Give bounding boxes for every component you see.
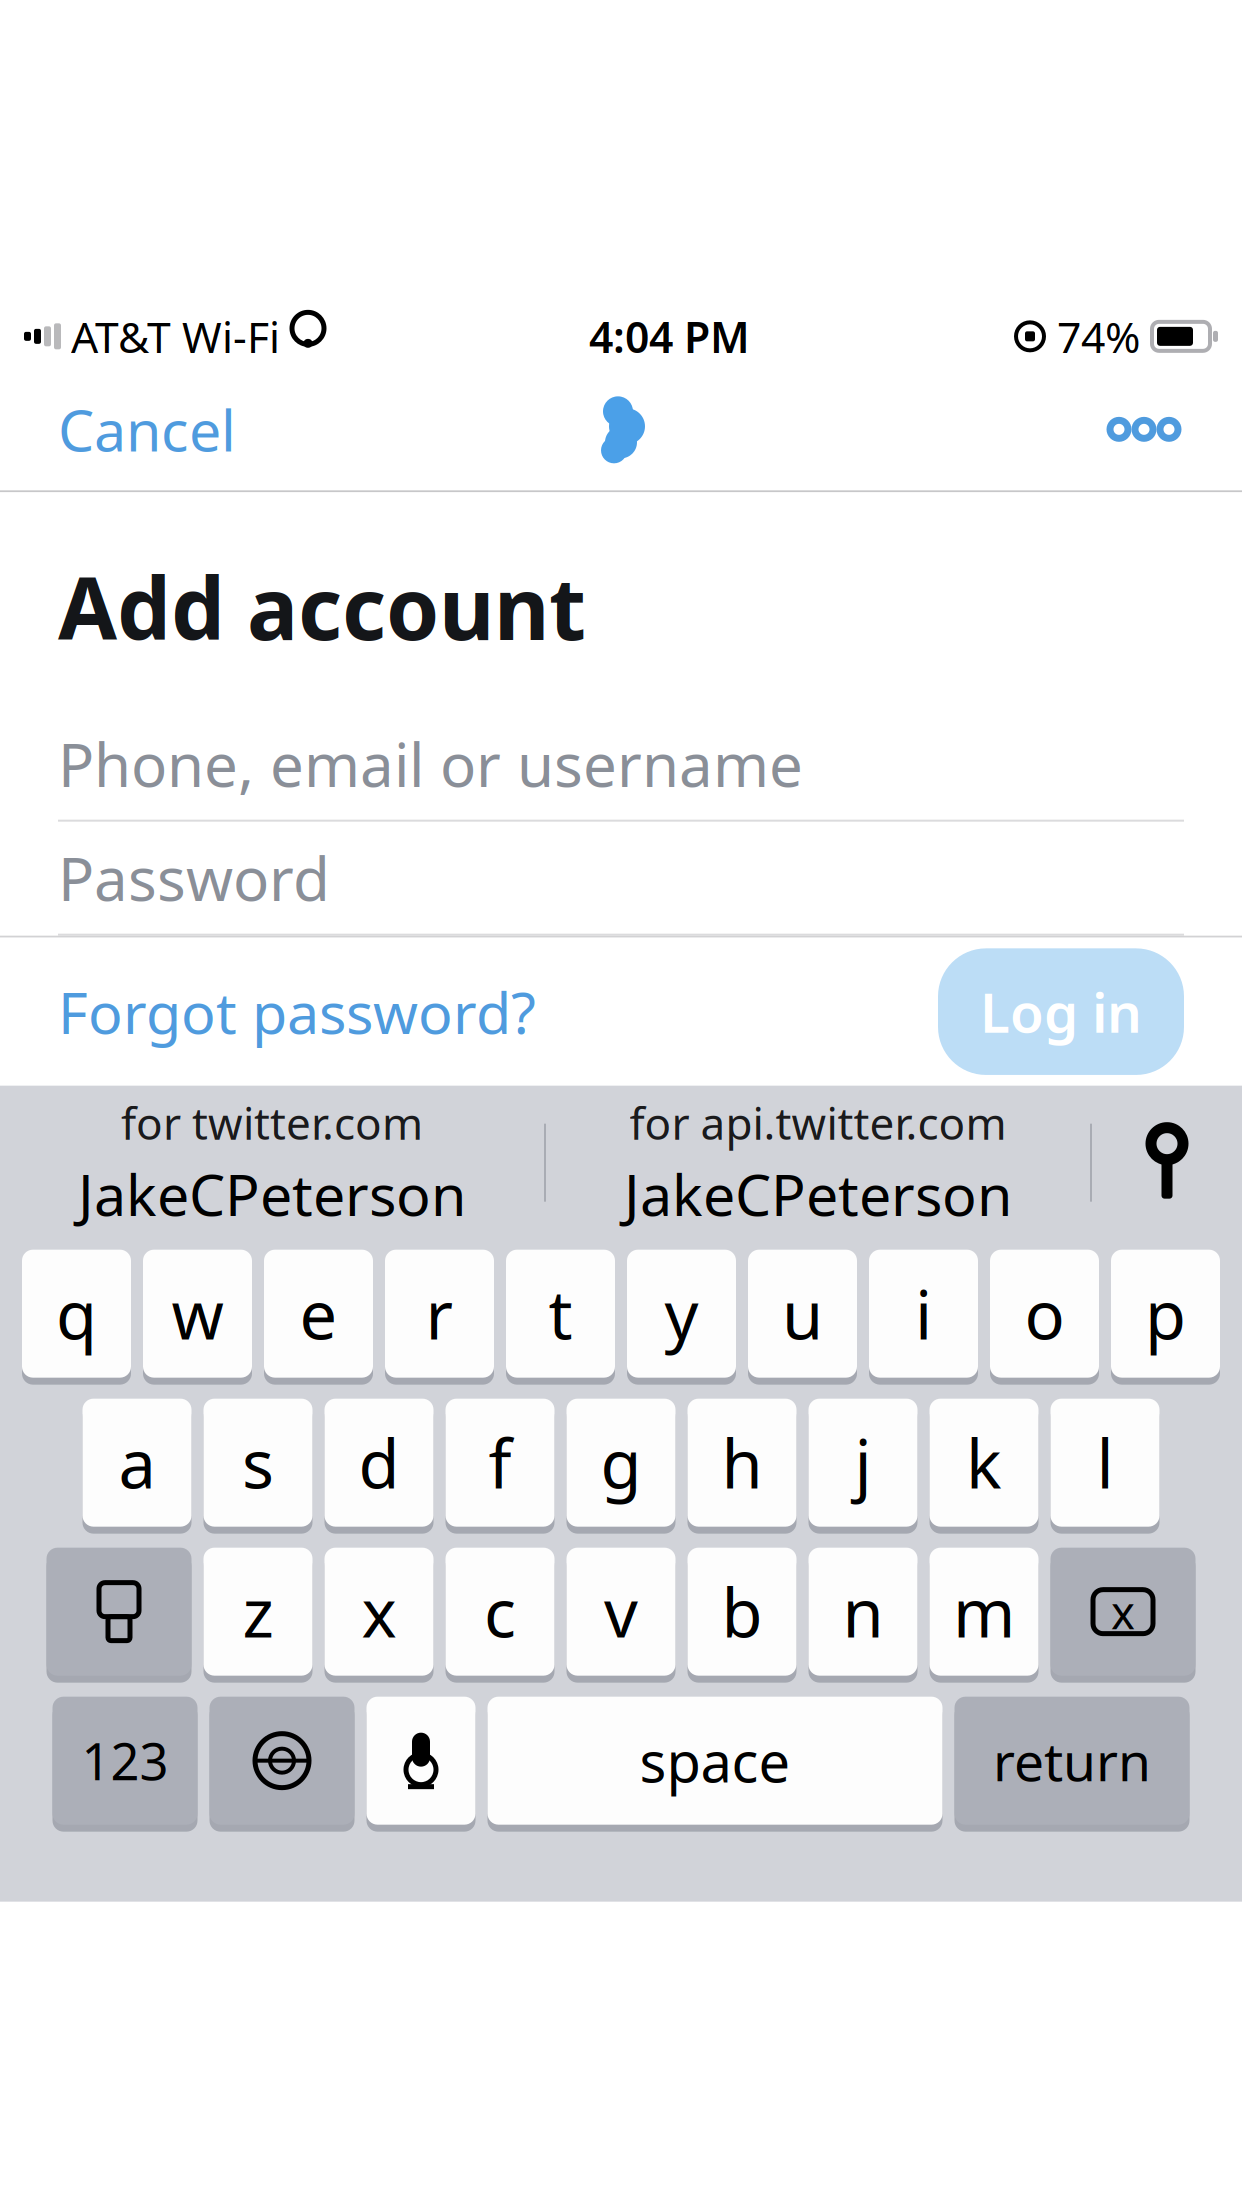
staticText: l (1096, 1418, 1113, 1507)
button[interactable]: return (954, 1697, 1189, 1832)
button[interactable]: s (203, 1399, 312, 1534)
staticText: d (358, 1418, 399, 1507)
staticText: h (721, 1418, 762, 1507)
staticText: p (1145, 1269, 1186, 1358)
staticText: Cancel (58, 391, 236, 467)
button[interactable]: z (203, 1548, 312, 1683)
staticText: x (361, 1567, 396, 1656)
button[interactable]: 123 (52, 1697, 197, 1832)
button[interactable]: Next keyboard (209, 1697, 354, 1832)
staticText: n (842, 1567, 883, 1656)
button[interactable]: Forgot password? (58, 954, 536, 1070)
staticText: e (299, 1269, 337, 1358)
button[interactable]: w (143, 1250, 252, 1385)
staticText: x (1111, 1582, 1135, 1642)
staticText: Password (58, 838, 330, 917)
button[interactable]: v (566, 1548, 675, 1683)
button[interactable]: Passwords (1092, 1109, 1242, 1217)
button[interactable]: c (445, 1548, 554, 1683)
staticText: i (915, 1269, 932, 1358)
staticText: Forgot password? (58, 974, 536, 1050)
button[interactable]: for api.twitter.com (546, 1077, 1090, 1248)
staticText: return (993, 1725, 1151, 1796)
staticText: f (488, 1418, 511, 1507)
staticText: w (171, 1269, 223, 1358)
button[interactable]: Log in (938, 948, 1184, 1075)
button[interactable]: m (929, 1548, 1038, 1683)
staticText: 123 (81, 1727, 168, 1794)
staticText: Add account (58, 550, 586, 664)
staticText: r (425, 1269, 453, 1358)
button[interactable]: for twitter.com (0, 1077, 544, 1248)
staticText: o (1024, 1269, 1064, 1358)
button[interactable]: k (929, 1399, 1038, 1534)
staticText: u (782, 1269, 823, 1358)
staticText: JakeCPeterson (624, 1156, 1012, 1232)
button[interactable]: d (324, 1399, 433, 1534)
button[interactable]: f (445, 1399, 554, 1534)
button[interactable]: e (264, 1250, 373, 1385)
button[interactable]: Delete (1050, 1548, 1195, 1683)
button[interactable]: More options (1086, 390, 1202, 468)
button[interactable]: space (487, 1697, 942, 1832)
button[interactable]: n (808, 1548, 917, 1683)
staticText: JakeCPeterson (78, 1156, 466, 1232)
button[interactable]: u (748, 1250, 857, 1385)
button[interactable]: l (1050, 1399, 1159, 1534)
staticText: for api.twitter.com (629, 1093, 1006, 1152)
staticText: t (548, 1269, 572, 1358)
button[interactable]: q (22, 1250, 131, 1385)
staticText: Phone, email or username (58, 724, 803, 803)
staticText: g (600, 1418, 641, 1507)
staticText: Log in (980, 975, 1142, 1048)
button[interactable]: Dictation (366, 1697, 475, 1832)
staticText: y (664, 1269, 698, 1358)
button[interactable]: Cancel (40, 369, 254, 489)
button[interactable]: o (990, 1250, 1099, 1385)
staticText: z (242, 1567, 273, 1656)
staticText: b (721, 1567, 762, 1656)
staticText: for twitter.com (121, 1093, 423, 1152)
staticText: q (56, 1269, 97, 1358)
staticText: 74% (1057, 308, 1140, 365)
button[interactable]: j (808, 1399, 917, 1534)
button[interactable]: p (1111, 1250, 1220, 1385)
staticText: k (966, 1418, 1002, 1507)
button[interactable]: t (506, 1250, 615, 1385)
staticText: space (639, 1723, 790, 1798)
staticText: AT&T Wi-Fi (71, 308, 280, 365)
staticText: a (118, 1418, 155, 1507)
staticText: c (484, 1567, 516, 1656)
button[interactable]: h (687, 1399, 796, 1534)
button[interactable]: x (324, 1548, 433, 1683)
staticText: m (953, 1567, 1015, 1656)
button[interactable]: i (869, 1250, 978, 1385)
button[interactable]: y (627, 1250, 736, 1385)
staticText: s (242, 1418, 274, 1507)
button[interactable]: g (566, 1399, 675, 1534)
staticText: 4:04 PM (589, 308, 750, 365)
button[interactable]: Shift (46, 1548, 191, 1683)
staticText: v (604, 1567, 638, 1656)
staticText: j (854, 1418, 871, 1507)
button[interactable]: r (385, 1250, 494, 1385)
button[interactable]: b (687, 1548, 796, 1683)
button[interactable]: a (82, 1399, 191, 1534)
